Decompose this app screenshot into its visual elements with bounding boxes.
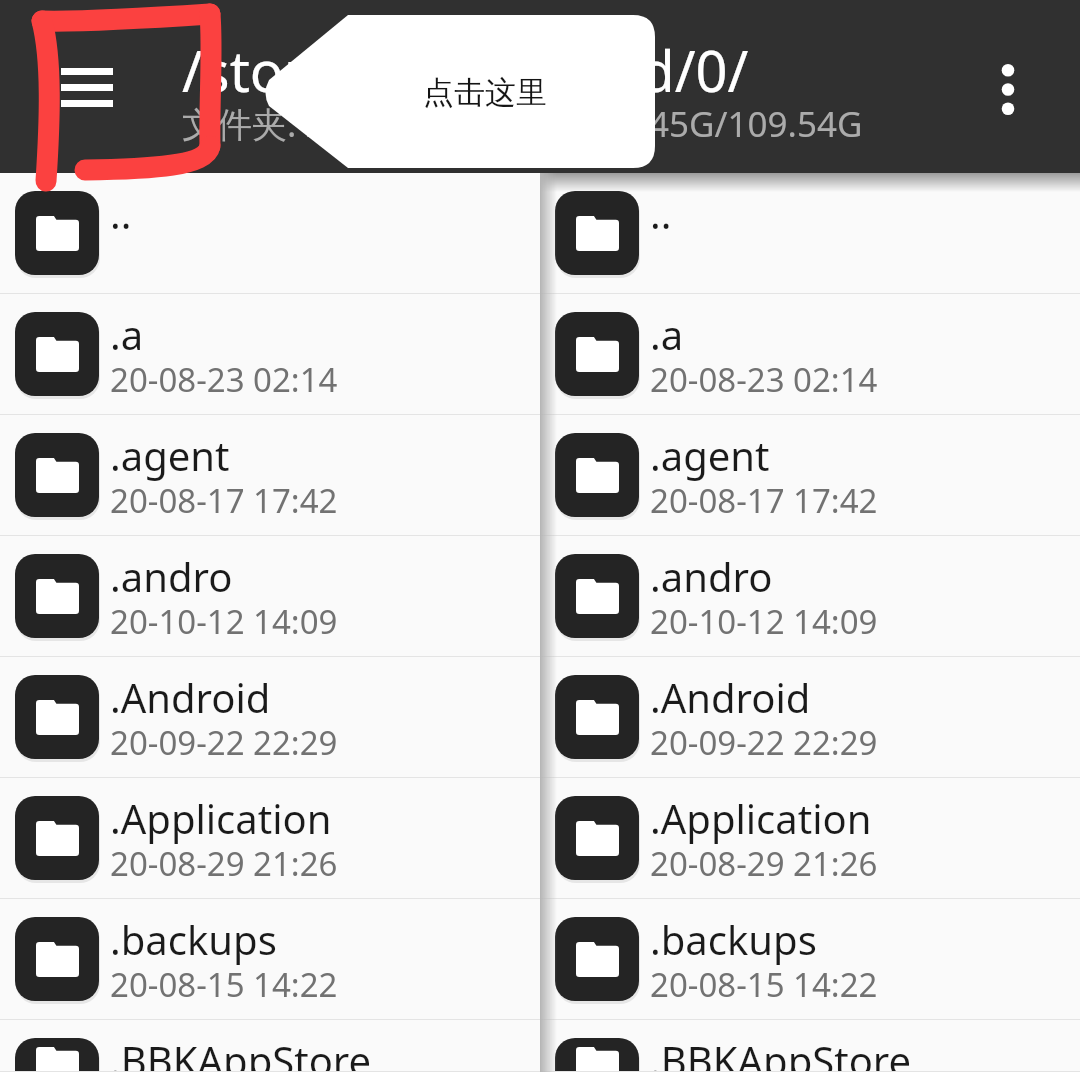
staticText: 20-08-29 21:26 <box>110 841 338 886</box>
button[interactable]: .Application <box>0 778 540 899</box>
button[interactable]: .Android <box>540 657 1080 778</box>
staticText: .agent <box>110 428 230 482</box>
staticText: 20-09-22 22:29 <box>650 720 878 765</box>
button[interactable]: .a <box>540 294 1080 415</box>
staticText: 20-09-22 22:29 <box>110 720 338 765</box>
staticText: 点击这里 <box>423 73 547 112</box>
button[interactable]: More options <box>966 43 1050 135</box>
staticText: 20-08-23 02:14 <box>650 357 878 402</box>
staticText: 20-10-12 14:09 <box>110 599 338 644</box>
button[interactable]: .andro <box>540 536 1080 657</box>
button[interactable]: .backups <box>0 899 540 1020</box>
staticText: 文件夹: 24, 文件: 163, 空间: 4.45G/109.54G <box>182 100 863 148</box>
staticText: .. <box>650 186 672 240</box>
button[interactable]: .backups <box>540 899 1080 1020</box>
staticText: .Android <box>650 670 811 724</box>
staticText: .backups <box>110 912 277 966</box>
staticText: 20-08-17 17:42 <box>110 478 338 523</box>
staticText: 20-08-15 14:22 <box>650 962 878 1007</box>
staticText: 20-08-17 17:42 <box>650 478 878 523</box>
button[interactable]: .Application <box>540 778 1080 899</box>
staticText: 20-10-12 14:09 <box>650 599 878 644</box>
staticText: .Application <box>650 791 872 845</box>
staticText: .Android <box>110 670 271 724</box>
staticText: .agent <box>650 428 770 482</box>
staticText: 20-08-23 02:14 <box>110 357 338 402</box>
staticText: .andro <box>110 549 233 603</box>
staticText: 20-08-29 21:26 <box>650 841 878 886</box>
staticText: .a <box>650 307 684 361</box>
button[interactable]: .agent <box>0 415 540 536</box>
button[interactable]: .. <box>540 173 1080 294</box>
staticText: /storage/emulated/0/ <box>182 32 749 108</box>
button[interactable]: .Android <box>0 657 540 778</box>
button[interactable]: Open navigation drawer <box>45 52 129 122</box>
staticText: .BBKAppStore <box>650 1033 912 1072</box>
button[interactable]: .. <box>0 173 540 294</box>
button[interactable]: .BBKAppStore <box>0 1020 540 1072</box>
button[interactable]: .a <box>0 294 540 415</box>
staticText: .backups <box>650 912 817 966</box>
staticText: .a <box>110 307 144 361</box>
button[interactable]: .agent <box>540 415 1080 536</box>
button[interactable]: .andro <box>0 536 540 657</box>
button[interactable]: .BBKAppStore <box>540 1020 1080 1072</box>
staticText: .Application <box>110 791 332 845</box>
staticText: .. <box>110 186 132 240</box>
staticText: 20-08-15 14:22 <box>110 962 338 1007</box>
staticText: .andro <box>650 549 773 603</box>
button[interactable]: 点击这里 <box>264 15 655 168</box>
staticText: .BBKAppStore <box>110 1033 372 1072</box>
